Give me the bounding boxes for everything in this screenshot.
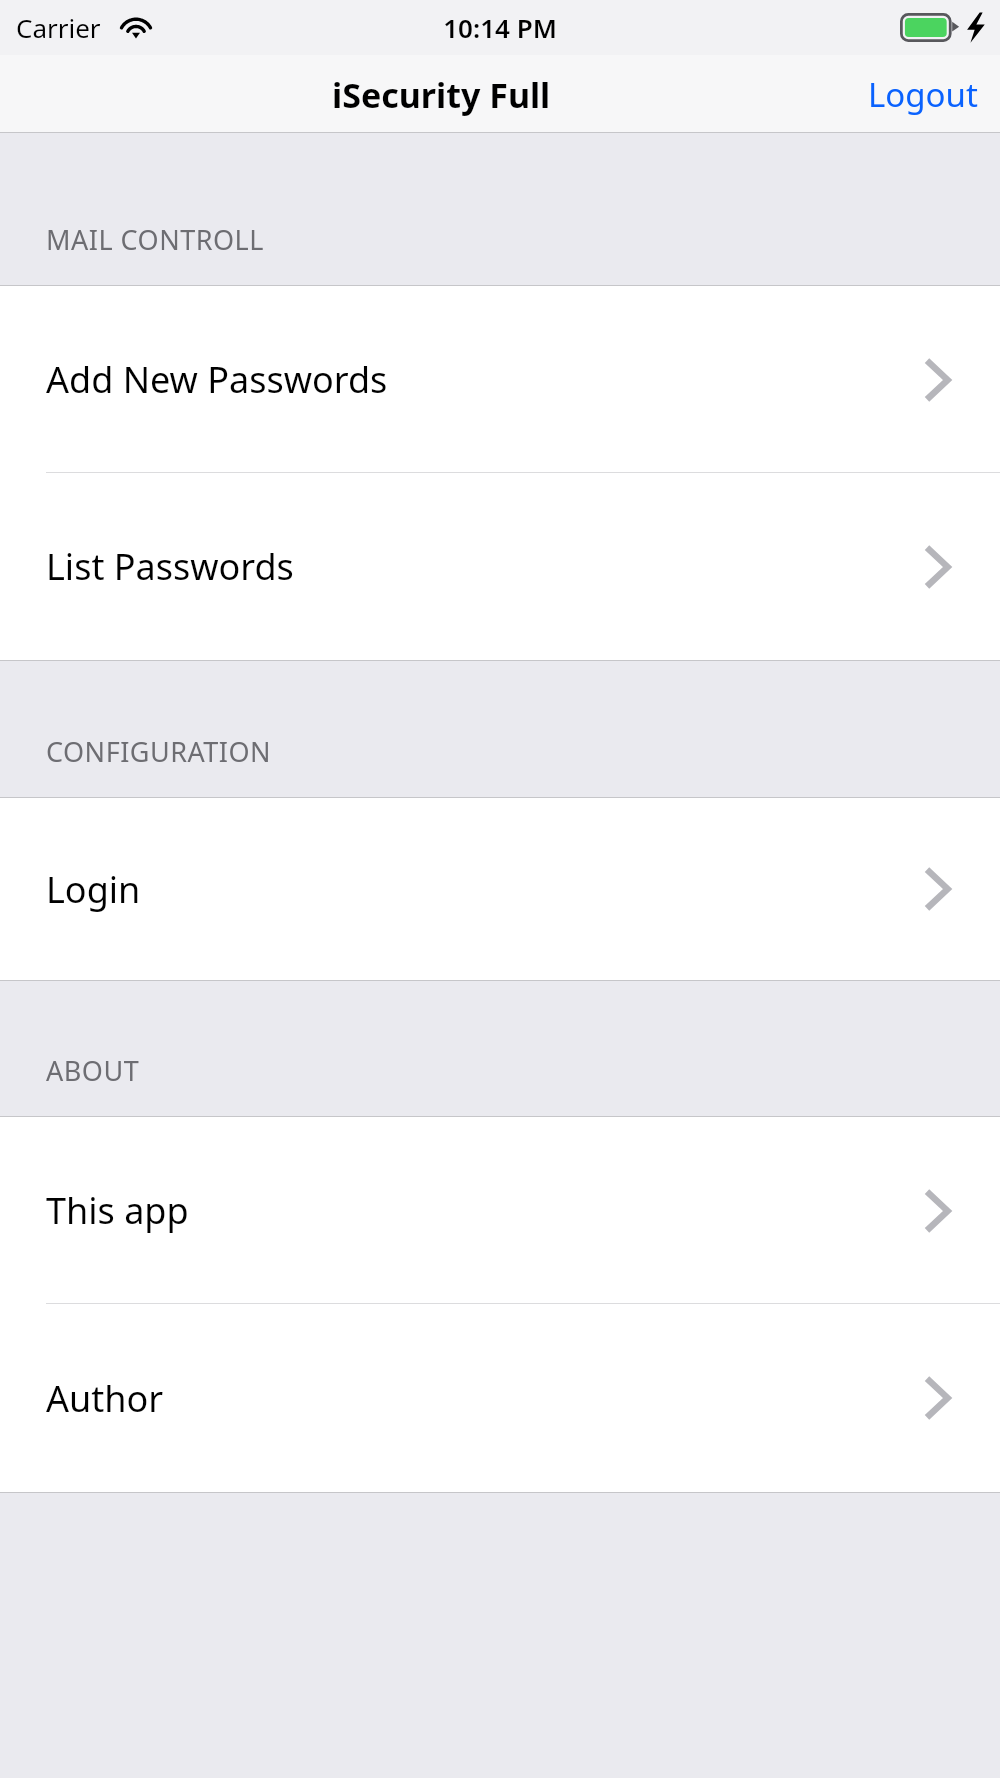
staticText: Author [46, 1374, 164, 1423]
button[interactable]: This app [0, 1117, 1000, 1304]
button[interactable]: Author [0, 1304, 1000, 1492]
staticText: This app [46, 1186, 189, 1235]
staticText: CONFIGURATION [46, 733, 272, 770]
staticText: Carrier [16, 10, 101, 45]
staticText: Add New Passwords [46, 355, 388, 404]
staticText: ABOUT [46, 1052, 140, 1089]
staticText: Logout [868, 72, 978, 117]
staticText: 10:14 PM [443, 10, 557, 45]
button[interactable]: Login [0, 798, 1000, 980]
button[interactable]: Logout [844, 58, 1000, 131]
staticText: MAIL CONTROLL [46, 221, 264, 258]
staticText: Login [46, 865, 141, 914]
staticText: iSecurity Full [332, 72, 551, 118]
button[interactable]: Add New Passwords [0, 286, 1000, 473]
staticText: List Passwords [46, 542, 294, 591]
button[interactable]: List Passwords [0, 473, 1000, 660]
